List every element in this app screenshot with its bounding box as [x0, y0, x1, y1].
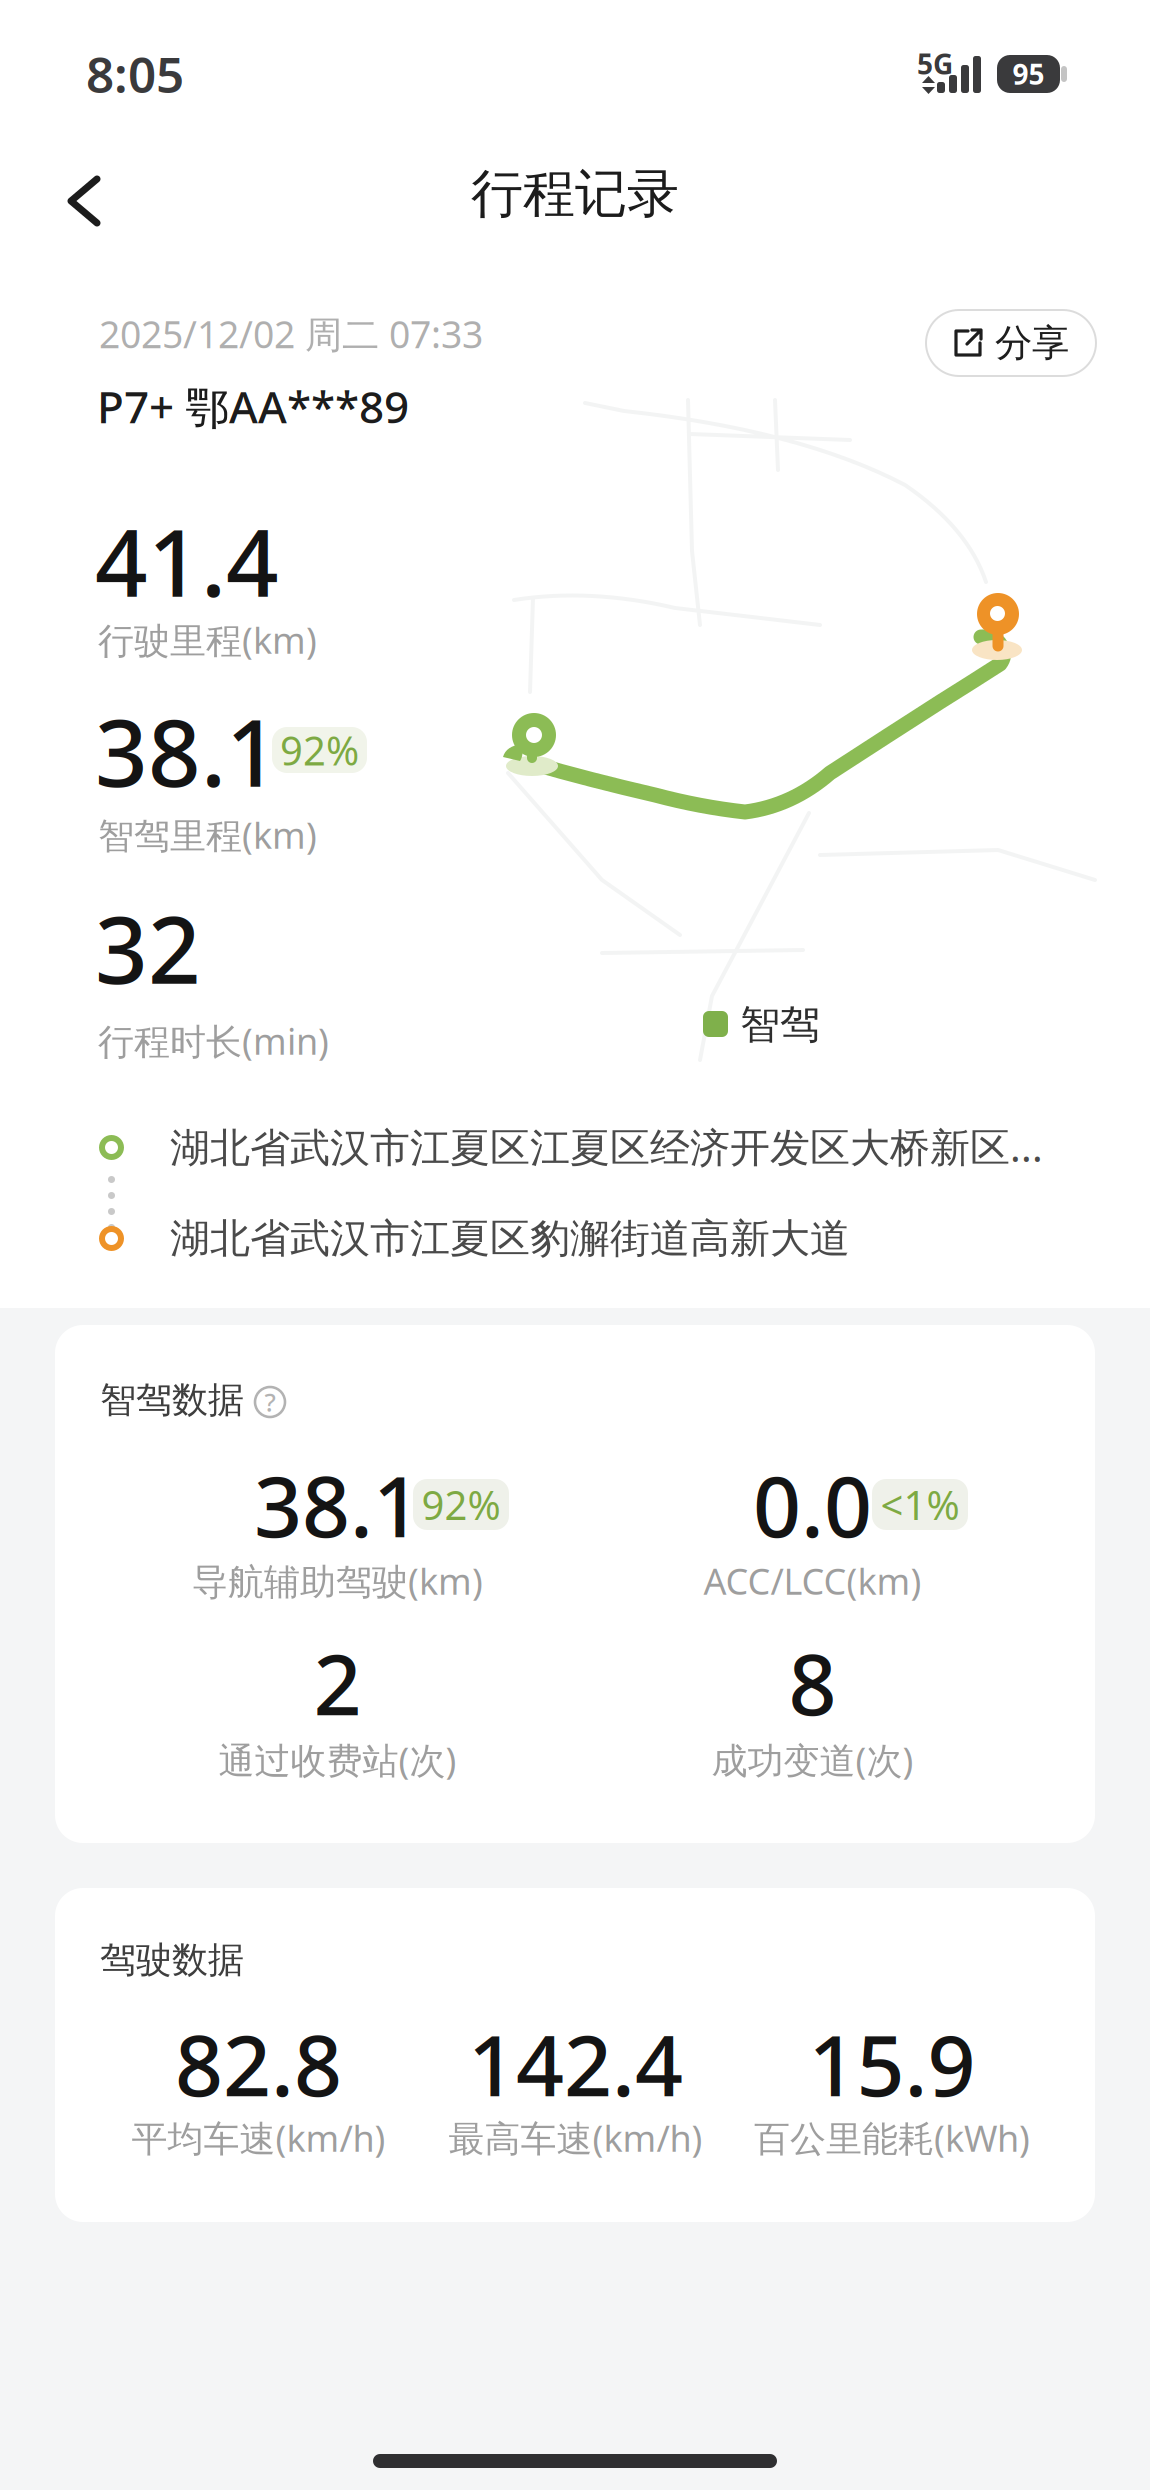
staticText: ?: [264, 1385, 275, 1419]
staticText: 82.8: [175, 2008, 342, 2119]
staticText: 智驾: [740, 1000, 820, 1049]
staticText: 导航辅助驾驶(km): [192, 1557, 483, 1605]
staticText: 142.4: [468, 2008, 683, 2119]
staticText: 行驶里程(km): [98, 616, 317, 664]
staticText: P7+ 鄂AA***89: [97, 377, 409, 436]
staticText: 41.4: [95, 500, 279, 622]
staticText: 通过收费站(次): [218, 1736, 456, 1784]
staticText: 92%: [421, 1478, 500, 1531]
staticText: 0.0: [753, 1449, 872, 1560]
staticText: 92%: [280, 723, 359, 776]
staticText: 驾驶数据: [100, 1938, 244, 1982]
staticText: 行程时长(min): [98, 1017, 329, 1065]
button[interactable]: 分享: [926, 310, 1096, 376]
staticText: 行程记录: [471, 162, 679, 226]
button[interactable]: 智驾数据说明: [255, 1387, 285, 1417]
staticText: 湖北省武汉市江夏区豹澥街道高新大道: [170, 1214, 850, 1263]
staticText: 8: [788, 1627, 836, 1738]
staticText: 2: [313, 1627, 361, 1738]
staticText: 95: [1012, 55, 1044, 93]
staticText: 8:05: [86, 41, 184, 106]
staticText: <1%: [880, 1478, 959, 1531]
staticText: 15.9: [808, 2008, 975, 2119]
staticText: ACC/LCC(km): [703, 1557, 921, 1605]
button[interactable]: Back: [64, 174, 104, 228]
staticText: 智驾里程(km): [98, 811, 317, 859]
staticText: 湖北省武汉市江夏区江夏区经济开发区大桥新区...: [170, 1120, 1043, 1173]
staticText: 最高车速(km/h): [448, 2114, 702, 2162]
staticText: 38.1: [254, 1449, 421, 1560]
staticText: 百公里能耗(kWh): [754, 2114, 1030, 2162]
staticText: 智驾数据: [100, 1378, 244, 1422]
staticText: 2025/12/02 周二 07:33: [99, 309, 483, 359]
staticText: 38.1: [95, 690, 279, 812]
staticText: 平均车速(km/h): [131, 2114, 385, 2162]
staticText: 5G: [917, 45, 953, 82]
staticText: 分享: [995, 320, 1069, 366]
staticText: 32: [95, 887, 201, 1009]
staticText: 成功变道(次): [711, 1736, 913, 1784]
